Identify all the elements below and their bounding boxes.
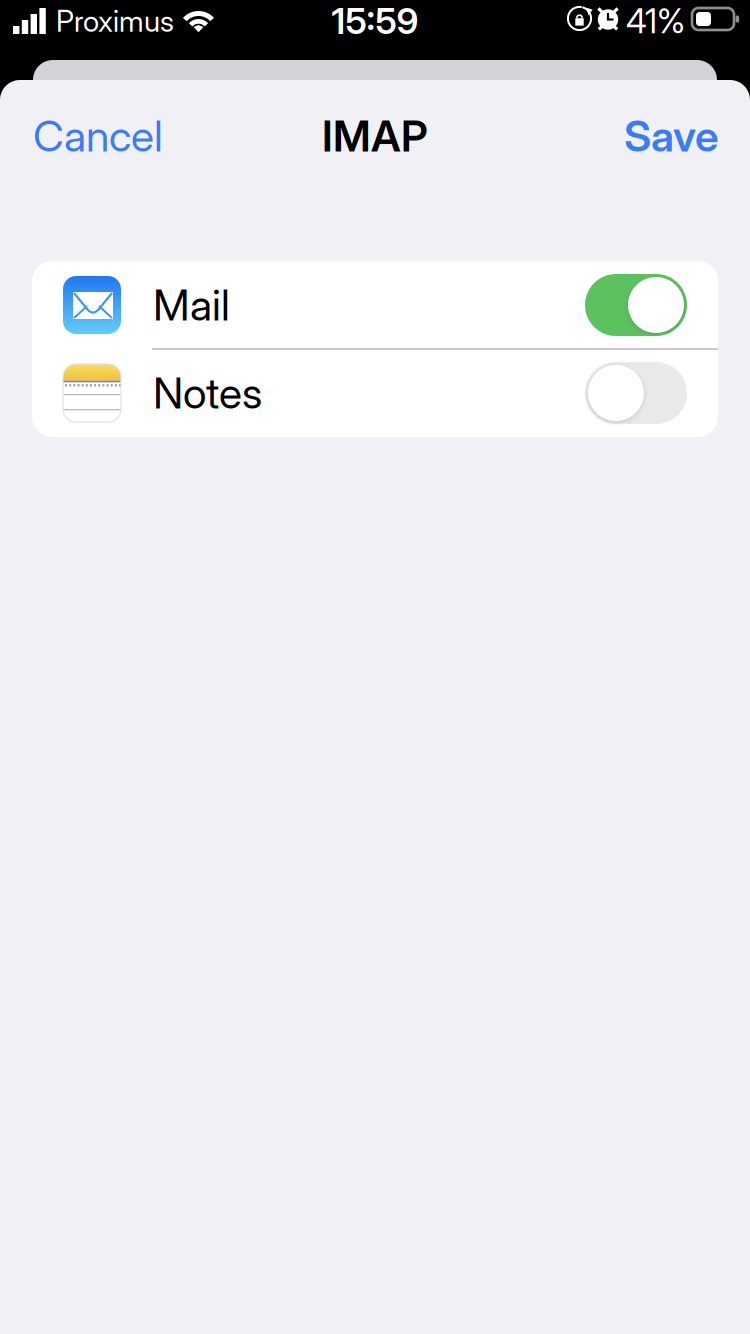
staticText: Save — [624, 110, 719, 162]
staticText: Cancel — [33, 110, 163, 162]
staticText: IMAP — [322, 110, 428, 162]
staticText: 41% — [626, 1, 685, 41]
staticText: Mail — [153, 279, 230, 331]
button[interactable]: Save — [532, 112, 732, 160]
staticText: Proximus — [56, 3, 174, 39]
button[interactable]: Cancel — [20, 112, 220, 160]
button[interactable]: Notes — [32, 349, 718, 437]
staticText: 15:59 — [331, 0, 418, 43]
button[interactable]: Mail — [32, 261, 718, 349]
staticText: Notes — [153, 367, 262, 419]
